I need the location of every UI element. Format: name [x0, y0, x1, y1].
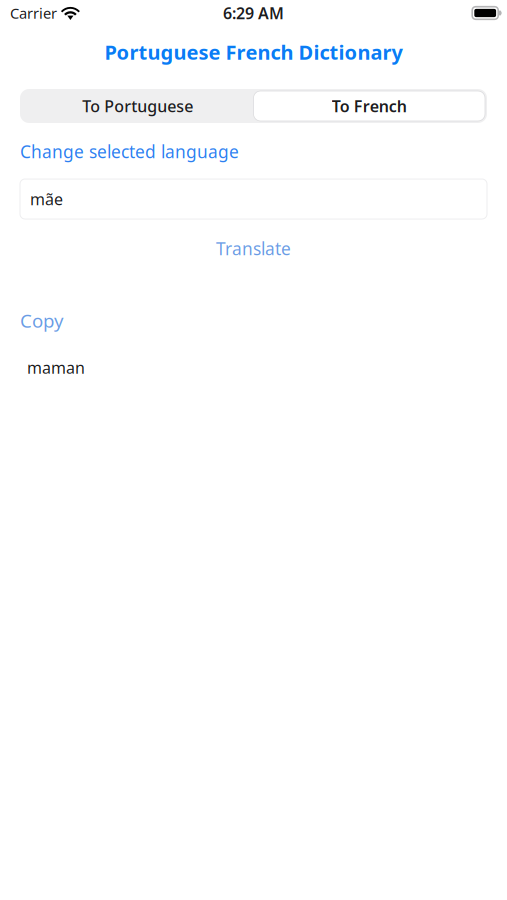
staticText: Change selected language	[20, 140, 239, 163]
button[interactable]: To Portuguese	[22, 91, 253, 121]
staticText: Carrier	[10, 3, 57, 23]
staticText: Copy	[20, 308, 64, 333]
button[interactable]: Change selected language	[20, 140, 487, 163]
staticText: mãe	[30, 188, 63, 210]
staticText: Translate	[216, 237, 291, 260]
button[interactable]: To French	[253, 91, 485, 121]
staticText: To French	[332, 95, 407, 117]
staticText: 6:29 AM	[223, 2, 284, 24]
staticText: maman	[27, 357, 85, 378]
button[interactable]: Copy	[20, 308, 487, 333]
button[interactable]: mãe	[20, 179, 487, 219]
staticText: Portuguese French Dictionary	[104, 39, 402, 65]
button[interactable]: Translate	[0, 237, 507, 260]
staticText: To Portuguese	[82, 95, 193, 117]
